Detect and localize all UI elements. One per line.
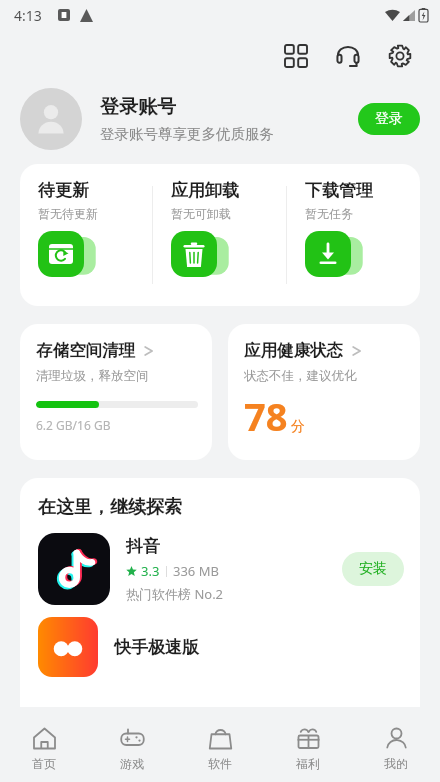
button[interactable]: 应用健康状态 <box>228 324 420 460</box>
button[interactable]: 我的 <box>352 714 440 782</box>
staticText: 3.3 <box>141 562 160 580</box>
staticText: 78 <box>244 390 288 442</box>
staticText: 抖音 <box>126 536 160 557</box>
button[interactable]: 应用卸载 <box>153 164 286 306</box>
button[interactable]: 抖音 <box>38 533 404 605</box>
staticText: 暂无任务 <box>305 206 353 221</box>
button[interactable]: Support <box>326 34 370 78</box>
staticText: 暂无待更新 <box>38 206 98 221</box>
staticText: 应用健康状态 <box>244 340 343 361</box>
staticText: 热门软件榜 No.2 <box>126 585 224 603</box>
staticText: 4:13 <box>14 6 42 25</box>
staticText: 登录账号尊享更多优质服务 <box>100 125 274 143</box>
staticText: 首页 <box>32 756 56 771</box>
staticText: 我的 <box>384 756 408 771</box>
staticText: 分 <box>291 418 305 436</box>
button[interactable]: 待更新 <box>20 164 152 306</box>
staticText: 登录 <box>375 110 403 128</box>
staticText: 安装 <box>359 560 387 578</box>
staticText: 软件 <box>208 756 232 771</box>
staticText: 应用卸载 <box>171 180 239 201</box>
staticText: 福利 <box>296 756 320 771</box>
staticText: 下载管理 <box>305 180 373 201</box>
staticText: 6.2 GB/16 GB <box>36 417 111 433</box>
staticText: 暂无可卸载 <box>171 206 231 221</box>
button[interactable]: 软件 <box>176 714 264 782</box>
staticText: 登录账号 <box>100 95 176 119</box>
button[interactable]: 登录 <box>358 103 420 135</box>
button[interactable]: 安装 <box>342 552 404 586</box>
button[interactable]: Settings <box>378 34 422 78</box>
button[interactable]: 下载管理 <box>287 164 420 306</box>
staticText: 待更新 <box>38 180 89 201</box>
button[interactable]: 游戏 <box>88 714 176 782</box>
staticText: 快手极速版 <box>114 637 199 658</box>
staticText: 状态不佳，建议优化 <box>244 368 357 384</box>
staticText: 存储空间清理 <box>36 340 135 361</box>
button[interactable]: Categories <box>274 34 318 78</box>
button[interactable]: 福利 <box>264 714 352 782</box>
staticText: 清理垃圾，释放空间 <box>36 368 149 384</box>
staticText: 336 MB <box>173 562 219 580</box>
staticText: 游戏 <box>120 756 144 771</box>
button[interactable]: 存储空间清理 <box>20 324 212 460</box>
staticText: 在这里，继续探索 <box>38 496 182 519</box>
button[interactable]: 登录账号 <box>20 88 420 150</box>
button[interactable]: 首页 <box>0 714 88 782</box>
